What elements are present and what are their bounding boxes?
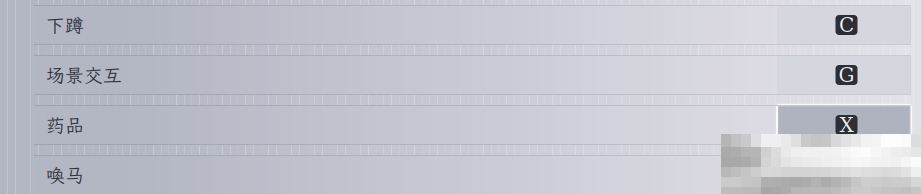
staticText: 场景交互 xyxy=(46,63,122,87)
staticText: 唤马 xyxy=(46,163,84,187)
staticText: 下蹲 xyxy=(46,13,84,37)
staticText: G xyxy=(838,63,854,87)
button[interactable]: C xyxy=(33,5,911,45)
staticText: 药品 xyxy=(46,113,84,137)
button[interactable]: G xyxy=(33,55,911,95)
staticText: X xyxy=(839,113,853,137)
button[interactable]: X xyxy=(33,105,911,145)
staticText: C xyxy=(839,13,854,37)
button[interactable]: 唤马 xyxy=(33,155,911,194)
